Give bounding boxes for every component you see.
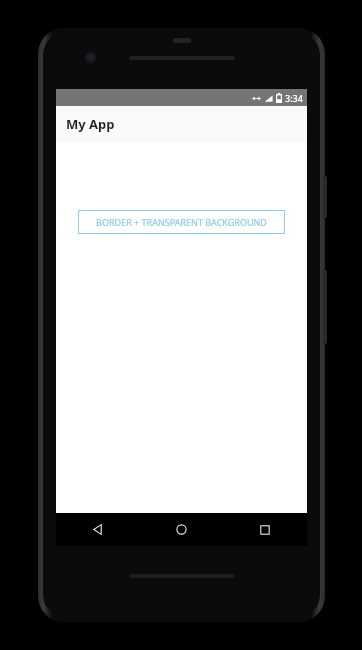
button[interactable]: Back <box>56 513 139 546</box>
button[interactable]: Recent apps <box>223 513 307 546</box>
button[interactable]: Home <box>139 513 223 546</box>
staticText: My App <box>66 115 115 133</box>
button[interactable]: BORDER + TRANSPARENT BACKGROUND <box>78 210 285 234</box>
staticText: 3:34 <box>285 92 303 104</box>
staticText: BORDER + TRANSPARENT BACKGROUND <box>96 216 267 228</box>
